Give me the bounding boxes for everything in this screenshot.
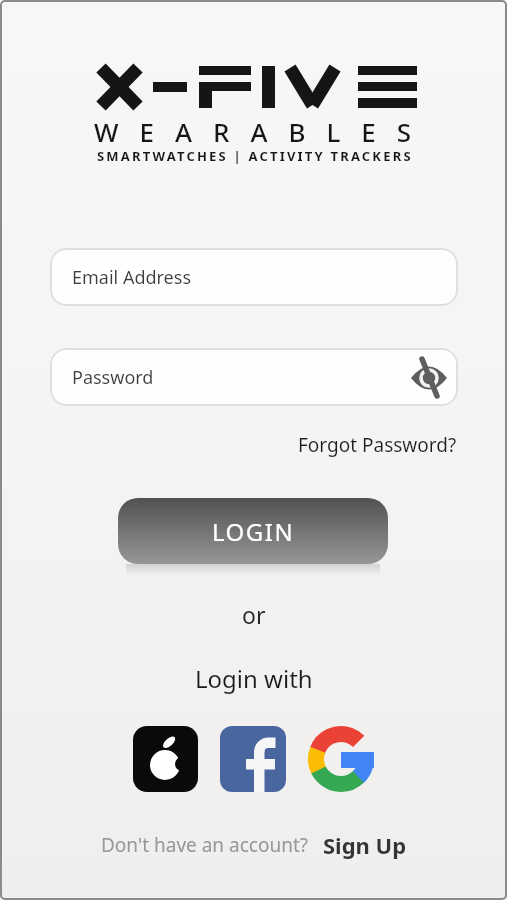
button[interactable]: Forgot Password? xyxy=(298,432,457,458)
button[interactable] xyxy=(133,726,198,792)
button[interactable]: Password xyxy=(50,348,458,406)
button[interactable] xyxy=(220,726,286,792)
staticText: Login with xyxy=(195,662,313,695)
button[interactable]: LOGIN xyxy=(118,498,388,564)
staticText: or xyxy=(242,599,266,630)
staticText: SMARTWATCHES | ACTIVITY TRACKERS xyxy=(97,147,413,165)
staticText: LOGIN xyxy=(212,515,295,548)
staticText: WEARABLES xyxy=(94,114,433,149)
button[interactable] xyxy=(308,726,374,792)
button[interactable]: Email Address xyxy=(50,248,458,306)
staticText: Don't have an account? xyxy=(101,832,309,858)
button[interactable]: Sign Up xyxy=(323,830,407,860)
button[interactable] xyxy=(410,359,448,397)
staticText: Email Address xyxy=(72,265,192,290)
staticText: Password xyxy=(72,365,154,390)
